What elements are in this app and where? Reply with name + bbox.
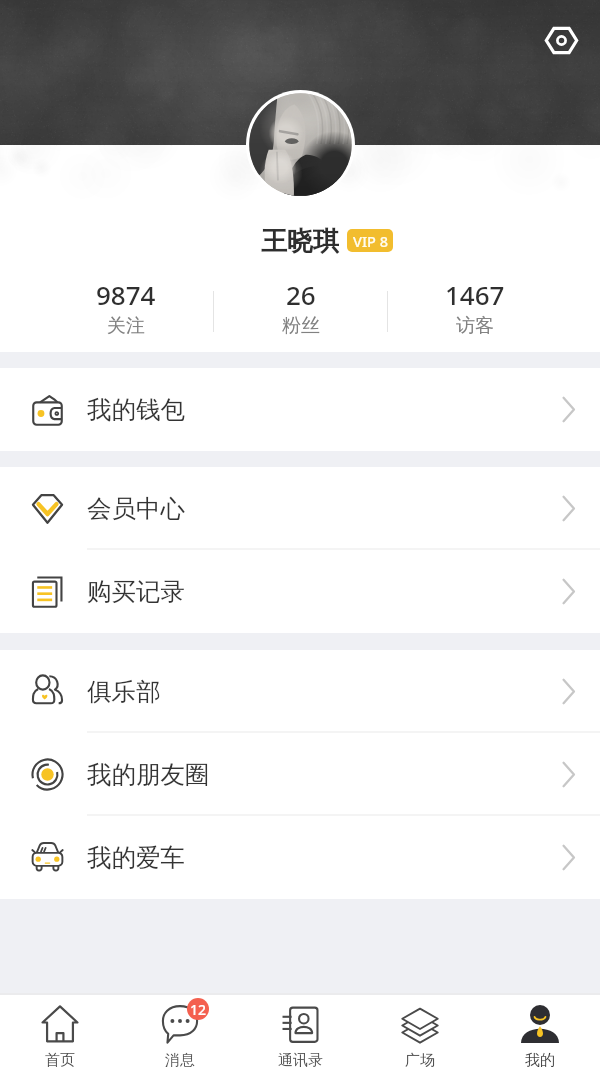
- staticText: 我的爱车: [87, 842, 185, 873]
- button[interactable]: Profile photo: [246, 90, 355, 199]
- button[interactable]: 我的钱包: [0, 368, 600, 451]
- button[interactable]: 1467: [388, 277, 561, 333]
- button[interactable]: 首页: [0, 993, 120, 1067]
- button[interactable]: 我的爱车: [0, 816, 600, 899]
- staticText: 通讯录: [278, 1051, 323, 1067]
- button[interactable]: 广场: [360, 993, 480, 1067]
- staticText: 购买记录: [87, 576, 185, 607]
- staticText: 粉丝: [282, 314, 320, 338]
- button[interactable]: 26: [214, 277, 387, 333]
- button[interactable]: 通讯录: [240, 993, 360, 1067]
- staticText: 26: [286, 277, 316, 312]
- staticText: 12: [190, 1000, 207, 1019]
- staticText: VIP 8: [353, 231, 388, 251]
- button[interactable]: 我的朋友圈: [0, 733, 600, 816]
- staticText: 访客: [456, 314, 494, 338]
- staticText: 9874: [96, 277, 156, 312]
- staticText: 我的朋友圈: [87, 759, 210, 790]
- button[interactable]: 购买记录: [0, 550, 600, 633]
- staticText: 我的: [525, 1051, 555, 1067]
- button[interactable]: VIP 8: [347, 229, 393, 252]
- staticText: 首页: [45, 1051, 75, 1067]
- staticText: 消息: [165, 1051, 195, 1067]
- staticText: 会员中心: [87, 493, 185, 524]
- button[interactable]: 12: [120, 993, 240, 1067]
- staticText: 我的钱包: [87, 394, 185, 425]
- staticText: 1467: [445, 277, 505, 312]
- button[interactable]: 我的: [480, 993, 600, 1067]
- staticText: 广场: [405, 1051, 435, 1067]
- button[interactable]: Settings: [546, 25, 577, 56]
- button[interactable]: 会员中心: [0, 467, 600, 550]
- button[interactable]: 9874: [39, 277, 213, 333]
- staticText: 王晓琪: [261, 225, 339, 258]
- button[interactable]: 俱乐部: [0, 650, 600, 733]
- staticText: 关注: [107, 314, 145, 338]
- staticText: 俱乐部: [87, 676, 161, 707]
